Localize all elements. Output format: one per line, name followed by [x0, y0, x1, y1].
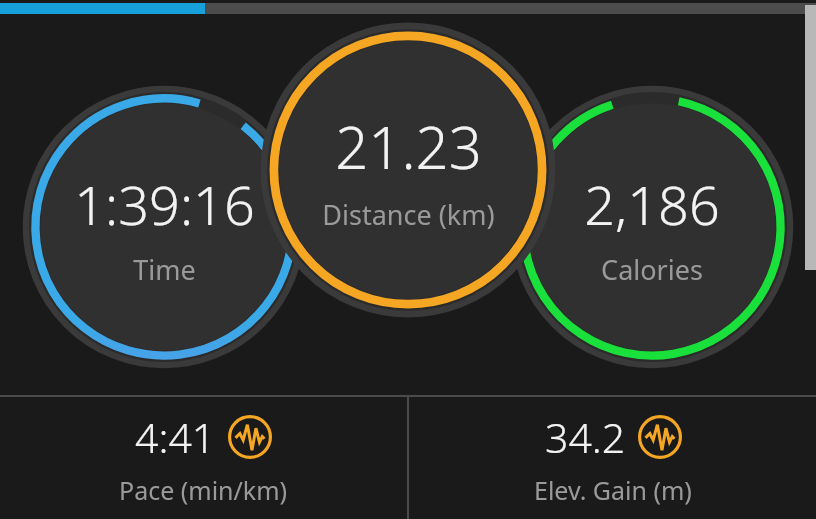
staticText: 1:39:16 — [74, 167, 255, 241]
staticText: 21.23 — [335, 107, 482, 186]
staticText: Elev. Gain (m) — [534, 473, 692, 507]
staticText: 34.2 — [545, 409, 626, 465]
staticText: 4:41 — [135, 409, 216, 465]
staticText: Distance (km) — [322, 196, 495, 233]
staticText: Calories — [601, 251, 703, 288]
button[interactable]: 21.23 — [263, 25, 553, 315]
button[interactable]: 2,186 — [513, 88, 791, 366]
button[interactable]: 34.2 — [409, 397, 816, 519]
staticText: Pace (min/km) — [119, 473, 288, 507]
button[interactable]: 1:39:16 — [25, 88, 303, 366]
staticText: Time — [133, 251, 196, 288]
other: Heart rate activity — [228, 415, 272, 459]
button[interactable]: 4:41 — [0, 397, 407, 519]
other: Heart rate activity — [638, 415, 682, 459]
staticText: 2,186 — [584, 167, 720, 241]
